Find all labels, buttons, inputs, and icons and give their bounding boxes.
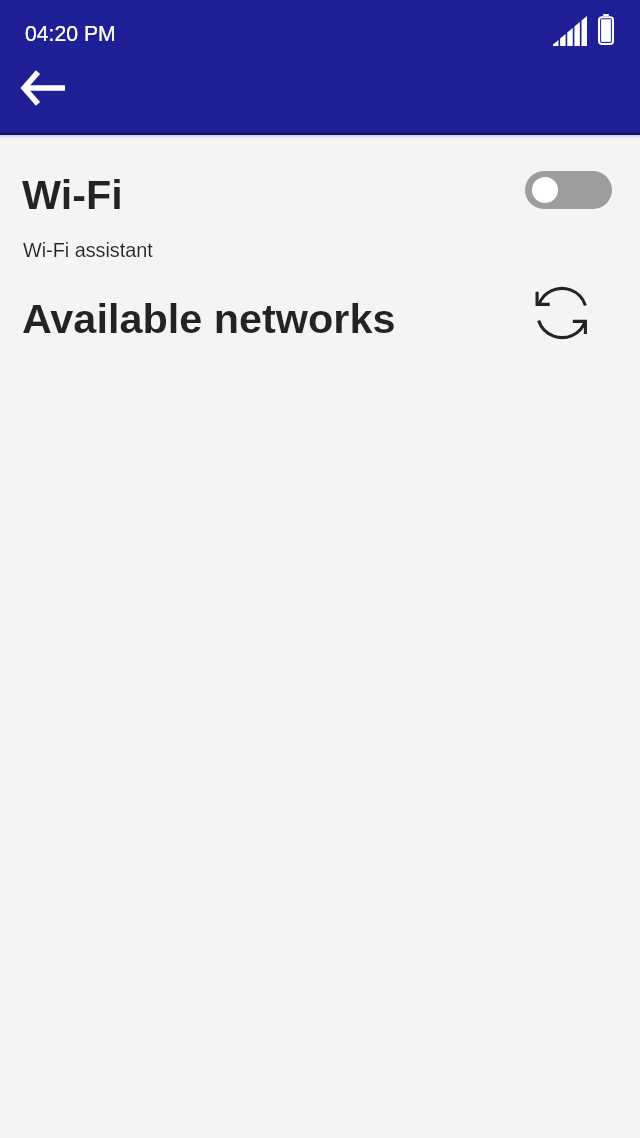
staticText: 04:20 PM: [25, 22, 116, 46]
button[interactable]: Refresh network list: [526, 278, 598, 348]
button[interactable]: Turn Wi-Fi on: [525, 171, 612, 209]
button[interactable]: Back: [2, 62, 78, 114]
staticText: Wi-Fi: [22, 172, 123, 218]
staticText: Wi-Fi assistant: [23, 239, 153, 261]
button[interactable]: Wi-Fi: [0, 158, 640, 234]
staticText: Available networks: [22, 296, 396, 342]
button[interactable]: Wi-Fi assistant: [0, 232, 640, 266]
